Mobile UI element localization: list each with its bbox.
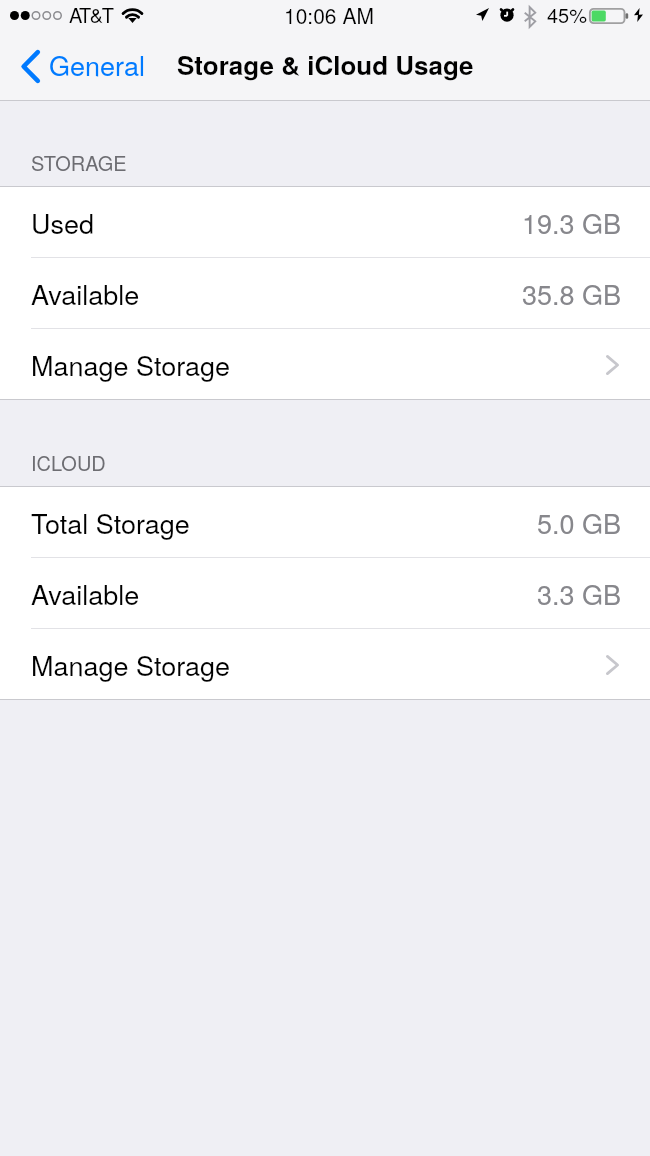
- staticText: Manage Storage: [31, 345, 231, 384]
- staticText: 19.3 GB: [522, 203, 622, 242]
- staticText: Available: [31, 274, 140, 313]
- staticText: General: [49, 45, 145, 84]
- staticText: 3.3 GB: [537, 574, 622, 613]
- staticText: 45%: [547, 0, 588, 29]
- staticText: Storage & iCloud Usage: [177, 46, 474, 83]
- button[interactable]: Manage Storage: [0, 629, 650, 700]
- button[interactable]: Used: [0, 187, 650, 258]
- staticText: 5.0 GB: [537, 503, 622, 542]
- other: Back to General: [21, 50, 40, 83]
- button[interactable]: Available: [0, 558, 650, 629]
- staticText: STORAGE: [31, 148, 127, 177]
- staticText: Manage Storage: [31, 645, 231, 684]
- staticText: 35.8 GB: [522, 274, 622, 313]
- button[interactable]: Available: [0, 258, 650, 329]
- button[interactable]: Back to General: [0, 37, 155, 92]
- staticText: ICLOUD: [31, 448, 106, 477]
- staticText: 10:06 AM: [284, 0, 374, 30]
- staticText: Used: [31, 203, 95, 242]
- staticText: Available: [31, 574, 140, 613]
- staticText: AT&T: [69, 0, 113, 29]
- staticText: Total Storage: [31, 503, 190, 542]
- button[interactable]: Total Storage: [0, 487, 650, 558]
- button[interactable]: Manage Storage: [0, 329, 650, 400]
